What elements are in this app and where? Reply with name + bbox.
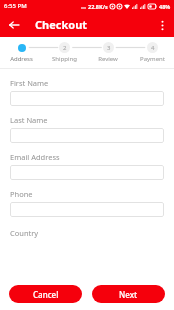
button[interactable]: More options [153, 16, 171, 34]
button[interactable]: Cancel [9, 285, 82, 303]
button[interactable]: 4 [130, 37, 174, 63]
staticText: First Name [10, 78, 49, 88]
staticText: Review [98, 55, 118, 63]
button[interactable]: Next [92, 285, 165, 303]
staticText: Phone [10, 189, 33, 199]
button[interactable]: Back [5, 16, 23, 34]
staticText: Address [10, 55, 33, 63]
button[interactable]: 3 [86, 37, 130, 63]
staticText: Cancel [33, 289, 59, 300]
staticText: 48% [159, 3, 171, 10]
staticText: Payment [140, 55, 165, 63]
staticText: Last Name [10, 115, 48, 125]
staticText: Shipping [52, 55, 77, 63]
button[interactable] [10, 91, 164, 106]
staticText: 4 [151, 44, 155, 52]
button[interactable]: 2 [43, 37, 86, 63]
staticText: 6:55 PM [4, 2, 27, 10]
button[interactable] [10, 165, 164, 180]
staticText: 2 [63, 44, 67, 52]
button[interactable] [10, 202, 164, 217]
button[interactable]: Address [0, 37, 43, 63]
staticText: Next [119, 289, 138, 300]
staticText: 22.8K/s [88, 3, 108, 10]
staticText: Email Address [10, 152, 60, 162]
staticText: Country [10, 228, 39, 238]
button[interactable] [10, 128, 164, 143]
staticText: 3 [107, 44, 111, 52]
staticText: Checkout [35, 17, 88, 32]
